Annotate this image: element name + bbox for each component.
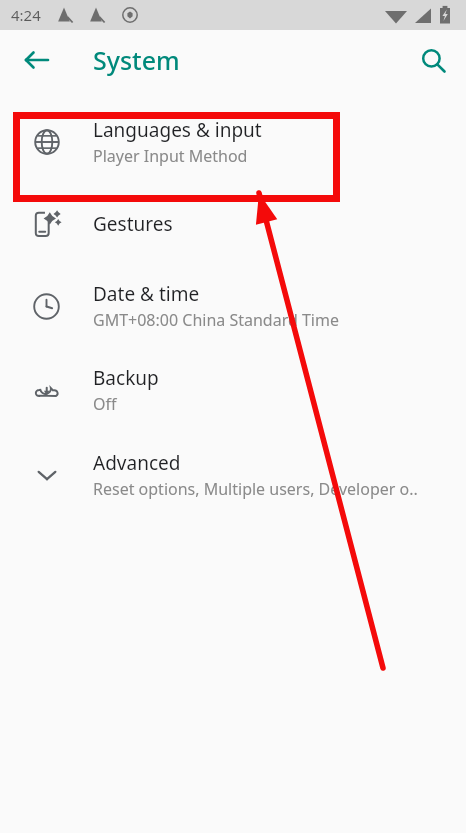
staticText: Advanced bbox=[93, 450, 181, 476]
staticText: 4:24 bbox=[11, 5, 41, 25]
staticText: Date & time bbox=[93, 281, 200, 307]
staticText: Reset options, Multiple users, Developer… bbox=[93, 478, 418, 500]
staticText: Gestures bbox=[93, 211, 173, 237]
staticText: Player Input Method bbox=[93, 145, 248, 167]
button[interactable]: Date & time bbox=[0, 265, 466, 347]
button[interactable]: Gestures bbox=[0, 183, 466, 265]
button[interactable]: Back bbox=[14, 37, 60, 83]
staticText: Off bbox=[93, 393, 117, 415]
button[interactable]: Backup bbox=[0, 347, 466, 432]
staticText: System bbox=[93, 43, 180, 77]
button[interactable]: Languages & input bbox=[0, 101, 466, 183]
button[interactable]: Advanced bbox=[0, 432, 466, 517]
staticText: Languages & input bbox=[93, 117, 262, 143]
button[interactable]: Search bbox=[410, 37, 456, 83]
staticText: GMT+08:00 China Standard Time bbox=[93, 309, 339, 331]
staticText: Backup bbox=[93, 365, 159, 391]
